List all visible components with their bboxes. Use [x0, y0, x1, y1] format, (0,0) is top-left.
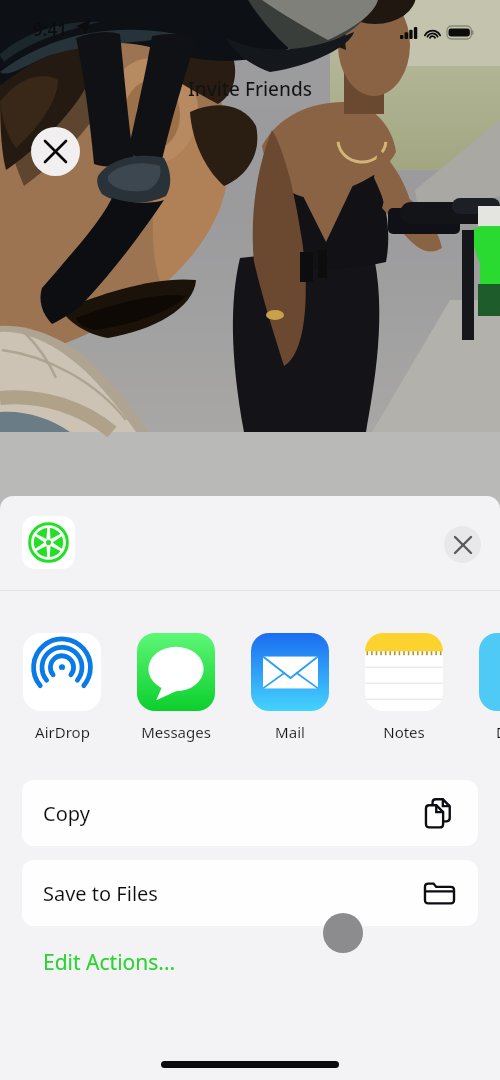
staticText: Mail	[275, 722, 305, 742]
staticText: Save to Files	[43, 880, 158, 907]
staticText: AirDrop	[35, 722, 90, 742]
button[interactable]: Save to Files	[22, 860, 478, 926]
staticText: Invite Friends	[188, 76, 312, 102]
button[interactable]: Close	[31, 127, 80, 176]
button[interactable]: Copy	[22, 780, 478, 846]
button[interactable]: Edit Actions...	[43, 948, 176, 977]
button[interactable]: Mail	[251, 633, 329, 742]
button[interactable]: AirDrop	[23, 633, 101, 742]
button[interactable]: Messages	[137, 633, 215, 742]
staticText: Messages	[141, 722, 211, 742]
staticText: Notes	[383, 722, 425, 742]
staticText: D	[496, 722, 500, 742]
staticText: 9:41	[33, 18, 67, 41]
staticText: Copy	[43, 800, 90, 827]
button[interactable]: D	[479, 633, 500, 742]
button[interactable]: Close share sheet	[444, 526, 481, 563]
button[interactable]: Notes	[365, 633, 443, 742]
